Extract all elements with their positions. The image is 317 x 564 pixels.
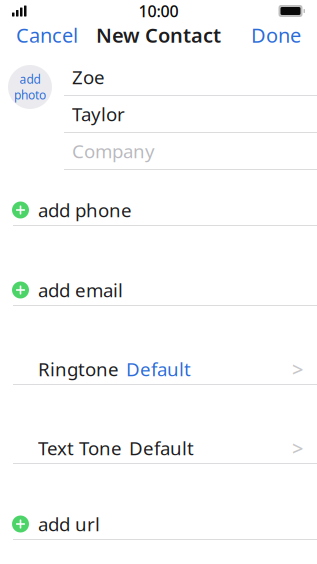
staticText: Default xyxy=(129,436,194,460)
staticText: Taylor xyxy=(72,102,125,126)
button[interactable]: Zoe xyxy=(0,59,317,95)
staticText: Text Tone xyxy=(38,436,122,460)
staticText: Done xyxy=(251,22,301,48)
staticText: > xyxy=(292,356,303,382)
staticText: Company xyxy=(72,139,155,163)
staticText: add xyxy=(19,71,40,87)
staticText: add phone xyxy=(38,198,132,222)
staticText: Ringtone xyxy=(38,357,119,381)
staticText: add email xyxy=(38,278,123,302)
staticText: Default xyxy=(126,357,191,381)
button[interactable]: Add photo xyxy=(8,65,52,109)
button[interactable]: Done xyxy=(249,16,303,54)
button[interactable]: add email xyxy=(0,275,317,305)
staticText: New Contact xyxy=(96,22,221,48)
button[interactable]: add phone xyxy=(0,195,317,225)
button[interactable]: add url xyxy=(0,509,317,539)
staticText: Zoe xyxy=(72,65,105,89)
staticText: 10:00 xyxy=(138,0,178,22)
staticText: add url xyxy=(38,512,100,536)
staticText: Cancel xyxy=(16,22,78,48)
button[interactable]: Ringtone xyxy=(0,354,317,384)
button[interactable]: Cancel xyxy=(14,16,80,54)
staticText: > xyxy=(292,435,303,461)
staticText: photo xyxy=(14,87,46,103)
button[interactable]: Text Tone xyxy=(0,433,317,463)
button[interactable]: Company xyxy=(0,133,317,169)
button[interactable]: Taylor xyxy=(0,96,317,132)
